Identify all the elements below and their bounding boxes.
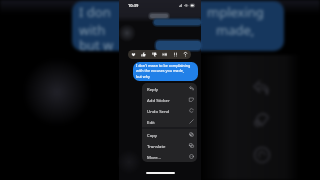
button[interactable]: Edit xyxy=(142,116,197,127)
button[interactable]: Copy xyxy=(142,129,197,140)
staticText: I don xyxy=(79,3,111,21)
button[interactable]: Thumbs down xyxy=(151,51,158,58)
staticText: Reply xyxy=(147,86,159,92)
staticText: Add Sticker xyxy=(147,97,170,103)
staticText: Translate xyxy=(147,143,166,149)
button[interactable]: Heart xyxy=(130,51,137,58)
staticText: More... xyxy=(147,154,162,160)
staticText: but w xyxy=(79,36,114,54)
staticText: Copy xyxy=(147,132,158,138)
staticText: Undo Send xyxy=(147,108,170,114)
button[interactable]: Haha xyxy=(161,51,168,58)
staticText: mplexing xyxy=(207,3,264,21)
button[interactable]: I don't mean to be complaining with the … xyxy=(133,62,198,81)
staticText: 10:39 xyxy=(128,3,139,8)
button[interactable]: Question xyxy=(182,51,189,58)
button[interactable]: Thumbs up xyxy=(140,51,147,58)
button[interactable]: Undo Send xyxy=(142,105,197,116)
button[interactable]: Add Sticker xyxy=(142,94,197,105)
staticText: with xyxy=(79,21,106,39)
staticText: made, xyxy=(216,21,255,39)
staticText: Edit xyxy=(147,119,155,125)
staticText: I don't mean to be complaining with the … xyxy=(136,63,191,80)
button[interactable]: Translate xyxy=(142,140,197,151)
button[interactable]: Exclaim xyxy=(172,51,179,58)
button[interactable]: More... xyxy=(142,151,197,162)
button[interactable]: Reply xyxy=(142,83,197,94)
